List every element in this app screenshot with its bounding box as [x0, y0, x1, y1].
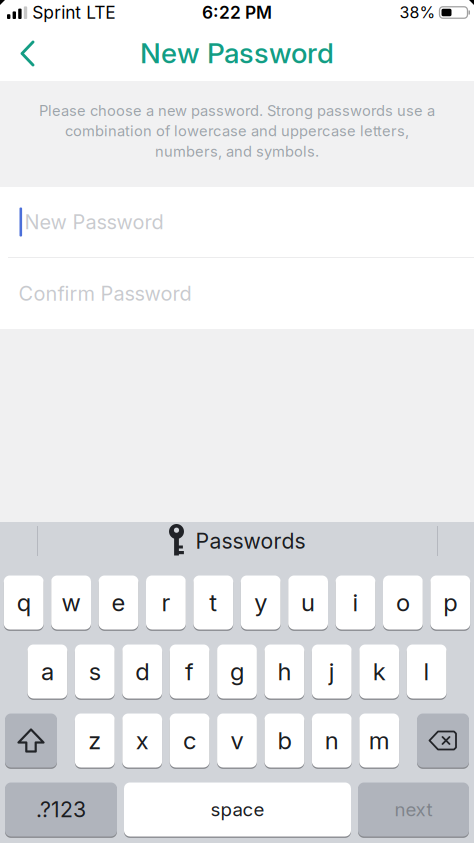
staticText: x: [136, 726, 149, 755]
button[interactable]: i: [336, 575, 375, 629]
staticText: z: [88, 726, 101, 755]
staticText: m: [369, 726, 390, 755]
staticText: j: [329, 657, 335, 686]
staticText: d: [135, 657, 149, 686]
button[interactable]: g: [217, 644, 257, 698]
button[interactable]: k: [359, 644, 399, 698]
staticText: combination of lowercase and uppercase l…: [65, 122, 409, 140]
button[interactable]: next: [358, 782, 469, 836]
staticText: q: [17, 588, 31, 617]
button[interactable]: l: [407, 644, 446, 698]
staticText: space: [210, 798, 264, 820]
button[interactable]: y: [241, 575, 281, 629]
staticText: numbers, and symbols.: [155, 143, 319, 160]
staticText: New Password: [25, 210, 164, 234]
staticText: .?123: [36, 797, 86, 822]
staticText: v: [230, 726, 243, 755]
staticText: h: [277, 657, 291, 686]
button[interactable]: t: [193, 575, 233, 629]
staticText: k: [373, 657, 386, 686]
staticText: y: [254, 588, 267, 617]
staticText: w: [62, 588, 81, 617]
button[interactable]: u: [288, 575, 328, 629]
staticText: Confirm Password: [18, 282, 191, 305]
staticText: r: [161, 588, 170, 617]
button[interactable]: q: [4, 575, 44, 629]
staticText: s: [89, 657, 101, 686]
button[interactable]: e: [99, 575, 138, 629]
button[interactable]: b: [264, 713, 304, 767]
staticText: Sprint LTE: [32, 2, 115, 23]
staticText: g: [230, 657, 244, 686]
staticText: t: [209, 588, 217, 617]
button[interactable]: .?123: [5, 782, 117, 836]
button[interactable]: v: [217, 713, 257, 767]
button[interactable]: r: [146, 575, 186, 629]
button[interactable]: a: [27, 644, 67, 698]
button[interactable]: space: [124, 782, 351, 836]
staticText: Please choose a new password. Strong pas…: [39, 102, 435, 119]
staticText: next: [394, 798, 432, 820]
button[interactable]: Confirm Password: [0, 258, 474, 329]
staticText: b: [277, 726, 291, 755]
staticText: f: [185, 657, 194, 686]
staticText: a: [41, 657, 54, 686]
button[interactable]: New Password: [0, 187, 474, 257]
button[interactable]: j: [312, 644, 352, 698]
button[interactable]: w: [51, 575, 91, 629]
button[interactable]: Passwords: [168, 520, 305, 575]
staticText: l: [424, 657, 430, 686]
button[interactable]: m: [359, 713, 399, 767]
button[interactable]: d: [122, 644, 162, 698]
staticText: p: [443, 588, 457, 617]
staticText: e: [111, 588, 125, 617]
button[interactable]: Back: [0, 25, 44, 81]
staticText: Passwords: [195, 528, 305, 554]
button[interactable]: n: [312, 713, 352, 767]
staticText: 38%: [399, 3, 435, 22]
button[interactable]: x: [122, 713, 162, 767]
staticText: n: [325, 726, 339, 755]
staticText: 6:22 PM: [202, 2, 272, 23]
button[interactable]: p: [430, 575, 470, 629]
button[interactable]: Shift: [5, 713, 57, 767]
button[interactable]: o: [383, 575, 423, 629]
button[interactable]: f: [170, 644, 209, 698]
staticText: u: [301, 588, 315, 617]
button[interactable]: c: [170, 713, 209, 767]
button[interactable]: s: [75, 644, 115, 698]
button[interactable]: Delete: [417, 713, 469, 767]
staticText: New Password: [140, 36, 334, 69]
staticText: o: [396, 588, 410, 617]
staticText: i: [352, 588, 358, 617]
button[interactable]: z: [75, 713, 115, 767]
staticText: c: [183, 726, 196, 755]
button[interactable]: h: [264, 644, 304, 698]
